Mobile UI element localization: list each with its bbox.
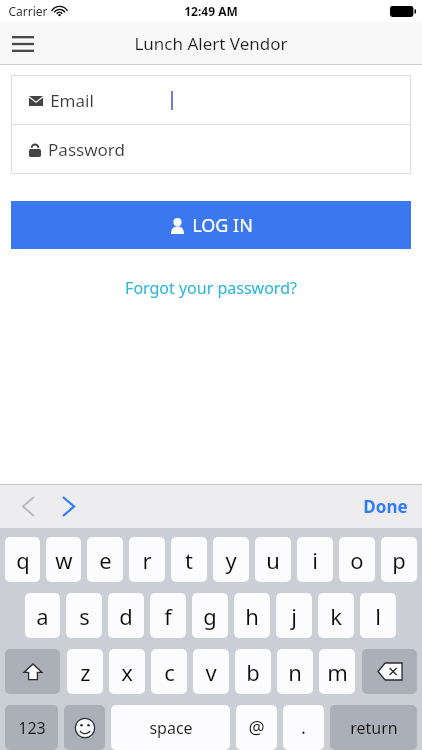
button[interactable]: x [109,649,145,694]
staticText: i [312,545,318,575]
staticText: return [350,717,398,739]
staticText: d [119,601,133,631]
button[interactable]: Email [11,76,411,124]
button[interactable]: w [46,537,81,582]
button[interactable]: k [318,593,354,638]
staticText: 12:49 AM [184,3,238,19]
button[interactable]: p [381,537,417,582]
staticText: j [291,601,297,631]
button[interactable]: r [129,537,165,582]
staticText: c [164,657,175,687]
staticText: q [16,545,30,575]
button[interactable]: z [67,649,103,694]
staticText: p [392,545,406,575]
staticText: LOG IN [192,213,253,238]
button[interactable]: d [108,593,144,638]
staticText: f [164,601,172,631]
staticText: Forgot your password? [125,277,297,299]
button[interactable]: t [171,537,207,582]
button[interactable]: LOG IN [11,201,411,249]
button[interactable]: v [193,649,229,694]
staticText: Email [50,89,94,112]
staticText: x [121,657,133,687]
button[interactable]: c [151,649,187,694]
staticText: h [245,601,259,631]
staticText: r [142,545,152,575]
button[interactable]: s [66,593,102,638]
staticText: o [350,545,364,575]
staticText: y [225,545,237,575]
button[interactable]: u [255,537,291,582]
staticText: e [99,545,112,575]
staticText: space [149,717,193,739]
button[interactable]: b [235,649,271,694]
staticText: b [246,657,260,687]
button[interactable]: Previous field [8,486,48,526]
button[interactable]: g [192,593,228,638]
button[interactable]: i [297,537,333,582]
button[interactable]: space [111,705,230,750]
button[interactable]: o [339,537,375,582]
staticText: Carrier [8,3,48,19]
button[interactable]: Backspace [362,649,417,694]
staticText: . [301,715,306,740]
staticText: Password [48,138,125,161]
staticText: Lunch Alert Vendor [134,32,288,55]
button[interactable]: Done [355,489,416,524]
button[interactable]: Next field [48,486,88,526]
button[interactable]: h [234,593,270,638]
button[interactable]: a [25,593,60,638]
button[interactable]: f [150,593,186,638]
button[interactable]: Forgot your password? [119,271,303,305]
button[interactable]: n [277,649,313,694]
staticText: g [203,601,217,631]
button[interactable]: q [5,537,40,582]
staticText: a [36,601,49,631]
staticText: k [330,601,342,631]
button[interactable]: Shift [5,649,60,694]
button[interactable]: Password [11,125,411,173]
button[interactable]: e [87,537,123,582]
staticText: Done [363,495,408,518]
button[interactable]: @ [236,705,277,750]
staticText: t [185,545,193,575]
staticText: w [55,545,73,575]
button[interactable]: j [276,593,312,638]
staticText: s [79,601,90,631]
button[interactable]: l [360,593,396,638]
staticText: l [375,601,381,631]
staticText: u [266,545,280,575]
button[interactable]: . [283,705,324,750]
button[interactable]: m [319,649,355,694]
button[interactable]: Menu [0,22,46,65]
staticText: v [205,657,217,687]
button[interactable]: return [330,705,417,750]
staticText: z [80,657,91,687]
staticText: n [288,657,302,687]
staticText: m [327,657,348,687]
staticText: 123 [18,717,46,739]
button[interactable]: Emoji [64,705,105,750]
button[interactable]: 123 [5,705,58,750]
button[interactable]: y [213,537,249,582]
staticText: @ [248,715,265,740]
